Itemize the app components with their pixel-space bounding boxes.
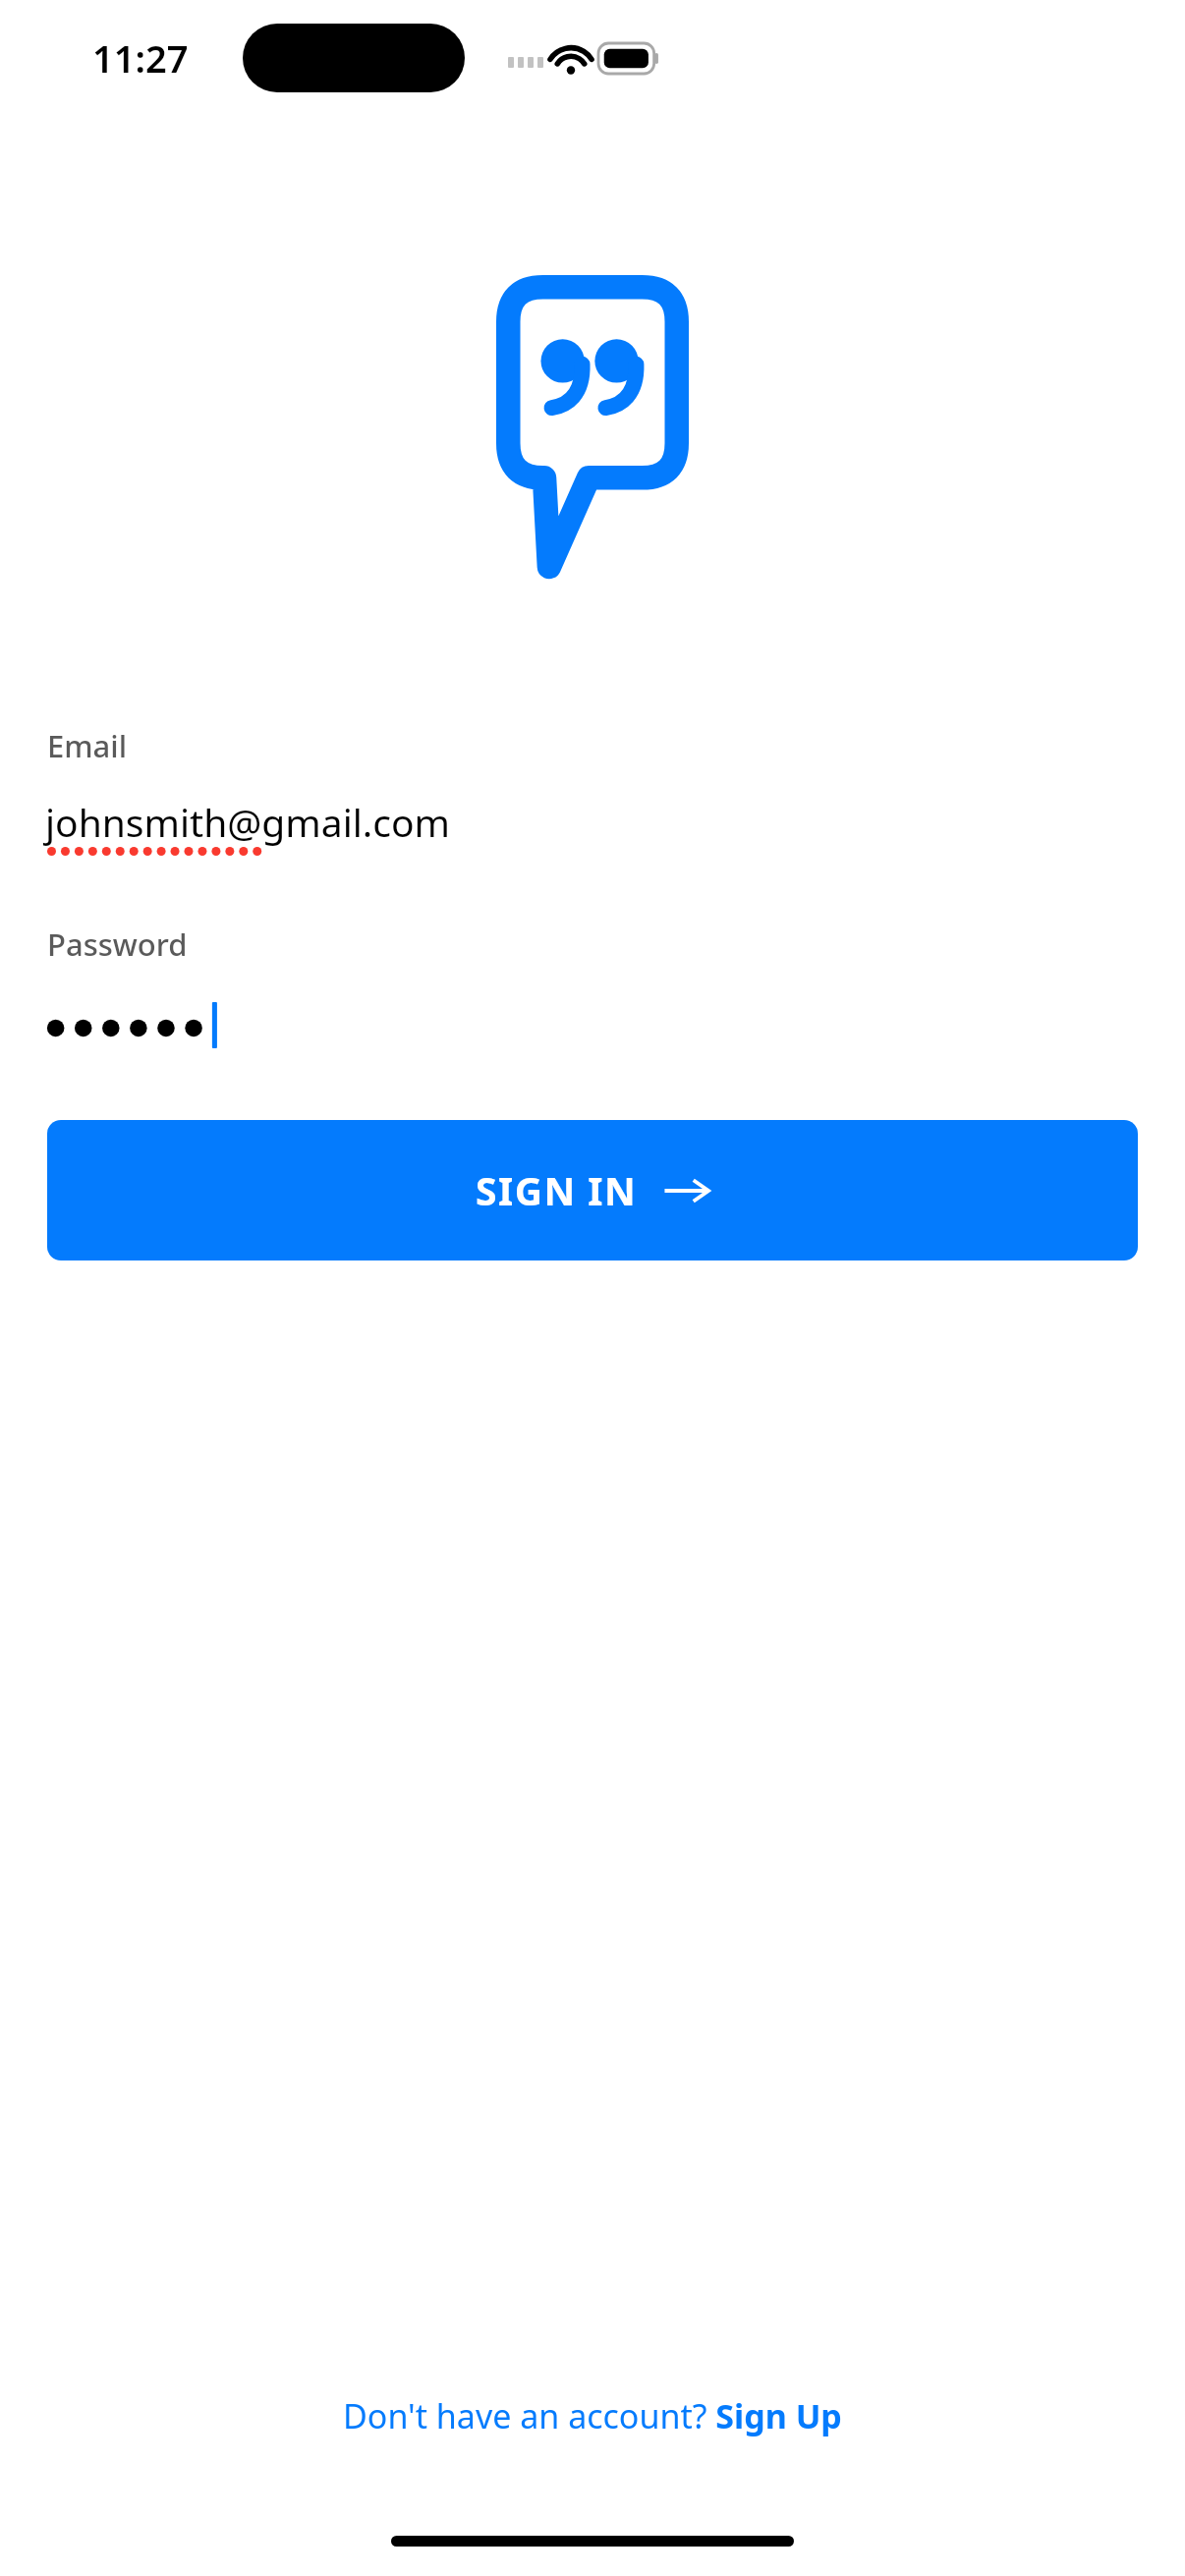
staticText: Password: [47, 924, 188, 965]
button[interactable]: [0, 996, 1185, 1057]
staticText: Email: [47, 725, 128, 766]
button[interactable]: Don't have an account? Sign Up: [329, 2385, 856, 2446]
other: Battery: [598, 43, 661, 74]
staticText: 11:27: [92, 32, 189, 84]
other: Wi-Fi: [551, 44, 591, 74]
other: App logo: [496, 275, 689, 570]
staticText: SIGN IN: [476, 1164, 638, 1216]
staticText: johnsmith@gmail.com: [45, 796, 450, 848]
staticText: Don't have an account? Sign Up: [343, 2393, 842, 2438]
button[interactable]: SIGN IN: [47, 1120, 1138, 1260]
button[interactable]: johnsmith@gmail.com: [0, 796, 1185, 867]
